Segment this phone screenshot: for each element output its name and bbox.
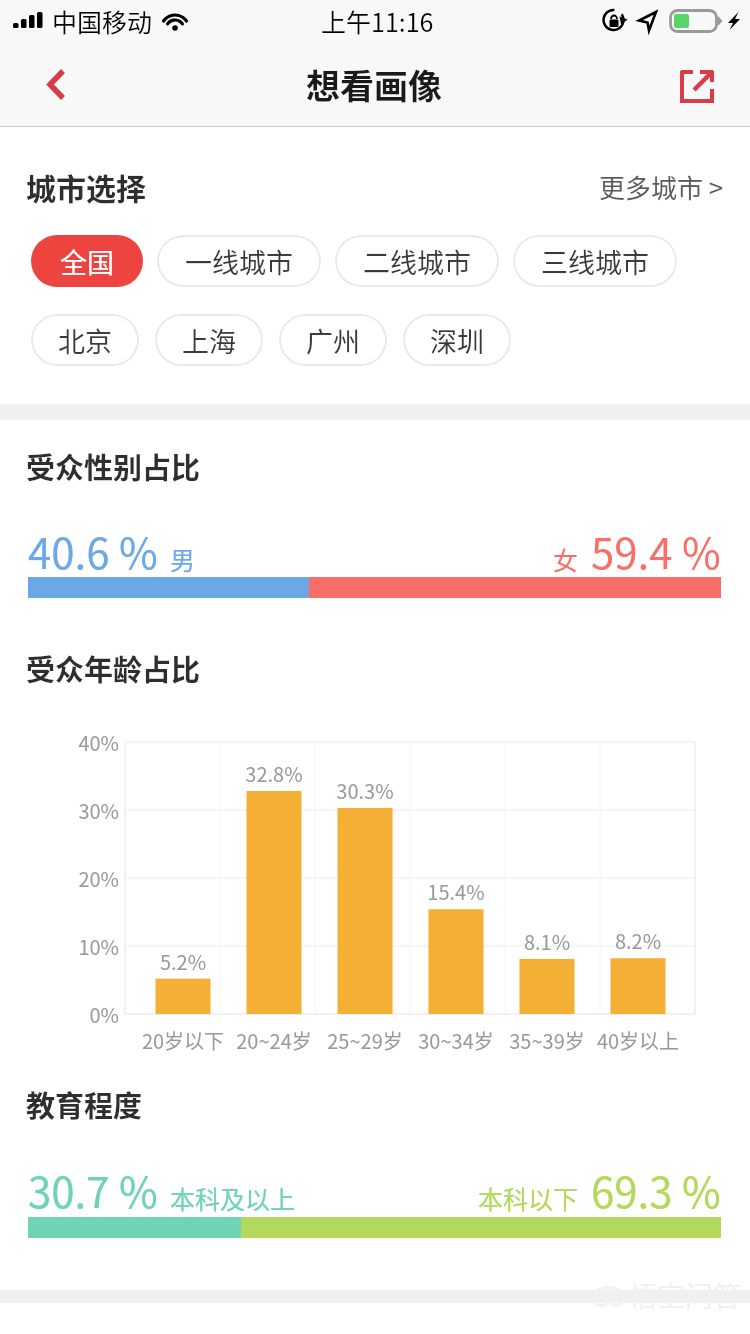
- staticText: 20%: [0, 864, 119, 893]
- staticText: 40岁以上: [588, 1026, 688, 1055]
- staticText: 想看画像: [306, 60, 442, 109]
- staticText: 10%: [0, 932, 119, 961]
- button[interactable]: 三线城市: [513, 235, 677, 287]
- staticText: 受众性别占比: [26, 445, 201, 487]
- staticText: 5.2%: [123, 947, 243, 976]
- button[interactable]: 更多城市 >: [599, 168, 724, 206]
- staticText: 上午11:16: [321, 3, 434, 39]
- button[interactable]: 深圳: [403, 314, 511, 366]
- staticText: 59.4 %: [591, 520, 721, 581]
- staticText: 教育程度: [26, 1083, 143, 1125]
- staticText: 0%: [0, 1000, 119, 1029]
- staticText: 更多城市 >: [599, 168, 724, 206]
- staticText: 深圳: [430, 321, 484, 360]
- staticText: 8.2%: [578, 926, 698, 955]
- staticText: 15.4%: [396, 877, 516, 906]
- staticText: 本科以下: [478, 1180, 579, 1216]
- staticText: 男: [170, 541, 196, 577]
- staticText: 二线城市: [363, 242, 471, 281]
- staticText: 上海: [182, 321, 236, 360]
- staticText: 25~29岁: [315, 1026, 415, 1055]
- staticText: 20岁以下: [133, 1026, 233, 1055]
- staticText: 一线城市: [185, 242, 293, 281]
- staticText: 69.3 %: [591, 1159, 721, 1220]
- staticText: 30.7 %: [28, 1159, 158, 1220]
- staticText: 北京: [58, 321, 112, 360]
- staticText: 30%: [0, 796, 119, 825]
- staticText: 8.1%: [487, 927, 607, 956]
- staticText: 40%: [0, 728, 119, 757]
- staticText: 20~24岁: [224, 1026, 324, 1055]
- button[interactable]: Share: [650, 46, 750, 127]
- button[interactable]: 一线城市: [157, 235, 321, 287]
- staticText: 35~39岁: [497, 1026, 597, 1055]
- staticText: 32.8%: [214, 759, 334, 788]
- staticText: 中国移动: [52, 3, 153, 39]
- staticText: 广州: [306, 321, 360, 360]
- button[interactable]: 广州: [279, 314, 387, 366]
- staticText: 女: [553, 541, 579, 577]
- button[interactable]: 北京: [31, 314, 139, 366]
- staticText: 悟空问答: [629, 1275, 742, 1316]
- staticText: 受众年龄占比: [26, 647, 201, 689]
- staticText: 城市选择: [26, 165, 146, 208]
- button[interactable]: 二线城市: [335, 235, 499, 287]
- button[interactable]: 上海: [155, 314, 263, 366]
- staticText: 全国: [60, 242, 114, 281]
- button[interactable]: 全国: [31, 235, 143, 287]
- staticText: 本科及以上: [170, 1180, 296, 1216]
- staticText: 三线城市: [541, 242, 649, 281]
- staticText: 30~34岁: [406, 1026, 506, 1055]
- button[interactable]: Back: [0, 46, 100, 127]
- staticText: 30.3%: [305, 776, 425, 805]
- staticText: 40.6 %: [28, 520, 158, 581]
